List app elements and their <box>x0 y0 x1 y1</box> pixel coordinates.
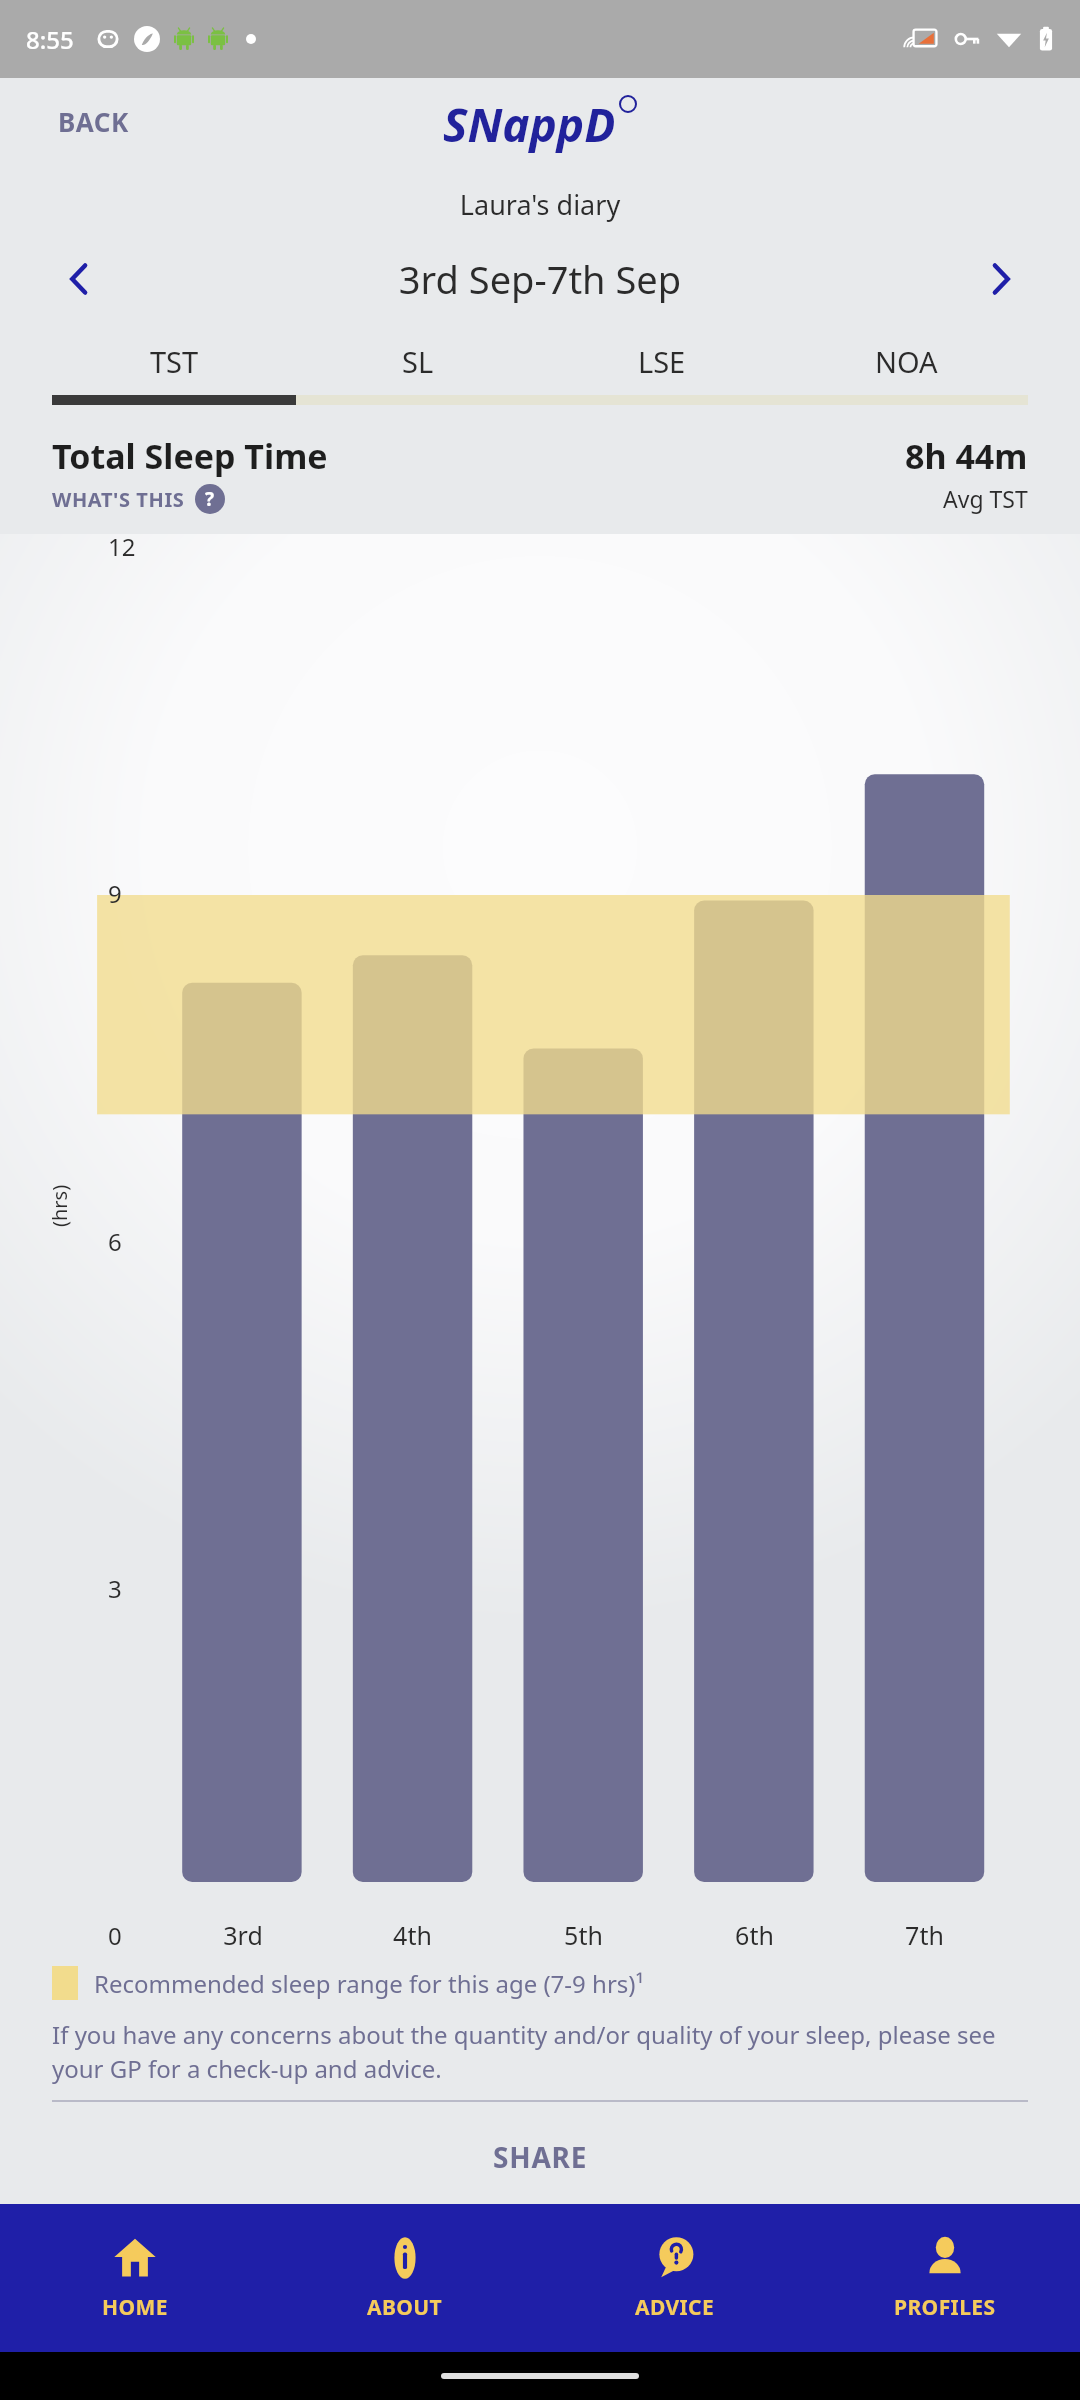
staticText: ? <box>205 486 215 512</box>
staticText: (hrs) <box>46 1184 73 1227</box>
button[interactable]: PROFILES <box>810 2204 1080 2352</box>
staticText: 12 <box>108 530 136 563</box>
staticText: Laura's diary <box>0 186 1080 223</box>
button[interactable]: ADVICE <box>540 2204 810 2352</box>
staticText: SNappD <box>443 93 616 156</box>
staticText: 4th <box>393 1918 432 1952</box>
staticText: HOME <box>102 2293 168 2322</box>
staticText: TST <box>150 342 199 381</box>
button[interactable]: SL <box>296 333 540 389</box>
staticText: 0 <box>108 1919 122 1952</box>
staticText: Total Sleep Time <box>52 433 905 479</box>
button[interactable]: Next week <box>974 252 1028 306</box>
staticText: 5th <box>564 1918 603 1952</box>
staticText: LSE <box>638 342 686 381</box>
staticText: SHARE <box>493 2138 588 2176</box>
button[interactable]: WHAT'S THIS <box>52 484 225 514</box>
button[interactable]: HOME <box>0 2204 270 2352</box>
staticText: ABOUT <box>367 2293 443 2322</box>
button[interactable]: LSE <box>540 333 784 389</box>
staticText: NOA <box>875 342 938 381</box>
staticText: 7th <box>905 1918 944 1952</box>
button[interactable]: BACK <box>54 100 133 143</box>
staticText: 9 <box>108 877 122 910</box>
button[interactable]: Previous week <box>52 252 106 306</box>
staticText: 3rd <box>223 1918 263 1952</box>
staticText: SL <box>402 342 434 381</box>
button[interactable]: ABOUT <box>270 2204 540 2352</box>
staticText: Recommended sleep range for this age (7-… <box>94 1967 644 2000</box>
staticText: PROFILES <box>894 2293 996 2322</box>
button[interactable]: SHARE <box>469 2130 612 2184</box>
staticText: 8h 44m <box>905 433 1028 479</box>
staticText: 3 <box>108 1572 122 1605</box>
staticText: ADVICE <box>635 2293 715 2322</box>
staticText: 8:55 <box>26 23 74 56</box>
staticText: 6th <box>735 1918 774 1952</box>
staticText: BACK <box>58 104 129 139</box>
staticText: Avg TST <box>943 483 1028 514</box>
staticText: If you have any concerns about the quant… <box>52 2018 1028 2086</box>
button[interactable]: NOA <box>784 333 1028 389</box>
staticText: 3rd Sep-7th Sep <box>106 253 974 305</box>
staticText: WHAT'S THIS <box>52 486 185 513</box>
button[interactable]: TST <box>52 333 296 389</box>
staticText: 6 <box>108 1225 122 1258</box>
